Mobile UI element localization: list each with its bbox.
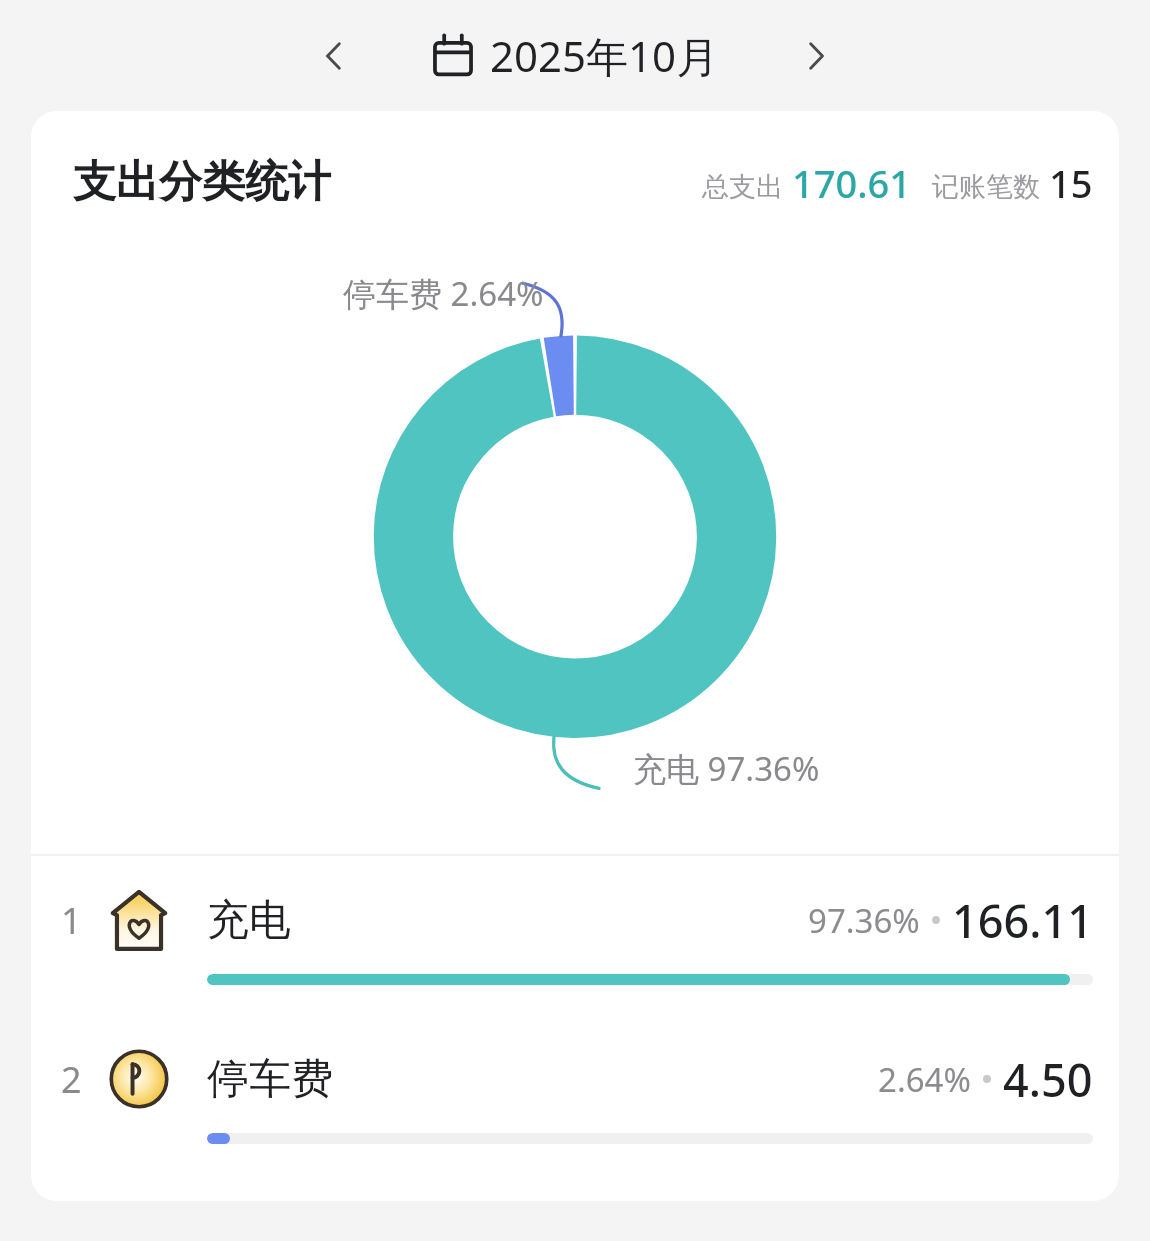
staticText: 2.64% [878, 1057, 971, 1102]
button[interactable]: 1 [31, 882, 1119, 985]
staticText: 97.36% [808, 898, 920, 943]
staticText: 1 [61, 896, 82, 945]
staticText: 2025年10月 [490, 27, 719, 84]
staticText: 15 [1049, 157, 1093, 209]
staticText: 充电 [207, 894, 291, 947]
staticText: 4.50 [1003, 1049, 1093, 1110]
button[interactable]: Next month [784, 24, 848, 88]
staticText: 支出分类统计 [73, 155, 331, 209]
staticText: 170.61 [792, 157, 912, 209]
staticText: 2 [61, 1055, 82, 1104]
button[interactable]: 2 [31, 1041, 1119, 1144]
staticText: 停车费 [207, 1053, 333, 1106]
staticText: 166.11 [952, 890, 1093, 951]
staticText: 停车费 2.64% [343, 271, 544, 316]
button[interactable]: 2025年10月 [431, 27, 719, 84]
button[interactable]: Previous month [302, 24, 366, 88]
staticText: 充电 97.36% [633, 746, 820, 791]
staticText: 总支出 [702, 170, 783, 204]
staticText: 记账笔数 [932, 170, 1040, 204]
